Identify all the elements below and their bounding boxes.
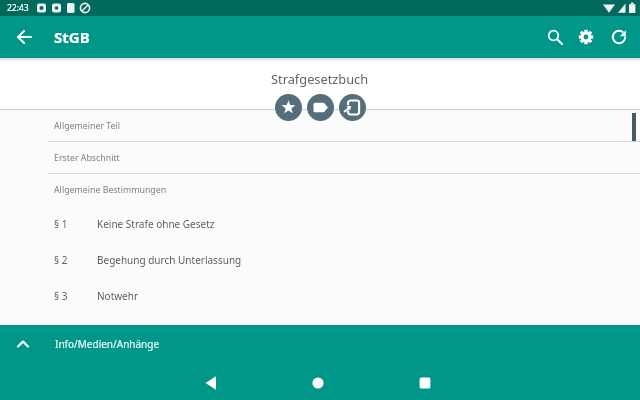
staticText: Begehung durch Unterlassung — [97, 253, 242, 267]
staticText: § 1 — [54, 217, 97, 231]
button[interactable] — [339, 94, 366, 121]
button[interactable] — [275, 94, 302, 121]
button[interactable]: Allgemeine Bestimmungen — [0, 174, 640, 206]
button[interactable] — [197, 369, 225, 397]
button[interactable]: § 1 — [0, 206, 640, 242]
button[interactable] — [307, 94, 334, 121]
staticText: § 2 — [54, 253, 97, 267]
button[interactable]: § 3 — [0, 278, 640, 314]
staticText: Allgemeiner Teil — [54, 120, 121, 132]
staticText: Strafgesetzbuch — [271, 70, 369, 87]
button[interactable] — [572, 23, 600, 51]
button[interactable] — [411, 369, 439, 397]
staticText: StGB — [54, 27, 90, 47]
button[interactable] — [541, 23, 569, 51]
staticText: Allgemeine Bestimmungen — [54, 184, 167, 196]
button[interactable]: § 2 — [0, 242, 640, 278]
button[interactable] — [10, 23, 38, 51]
button[interactable] — [304, 369, 332, 397]
staticText: 22:43 — [7, 2, 29, 14]
staticText: Info/Medien/Anhänge — [55, 337, 160, 351]
staticText: Notwehr — [97, 289, 139, 303]
staticText: § 3 — [54, 289, 97, 303]
button[interactable] — [605, 23, 633, 51]
button[interactable]: Allgemeiner Teil — [0, 110, 640, 142]
staticText: Keine Strafe ohne Gesetz — [97, 217, 215, 231]
staticText: Erster Abschnitt — [54, 152, 120, 164]
button[interactable]: Erster Abschnitt — [0, 142, 640, 174]
button[interactable]: Info/Medien/Anhänge — [0, 325, 640, 363]
